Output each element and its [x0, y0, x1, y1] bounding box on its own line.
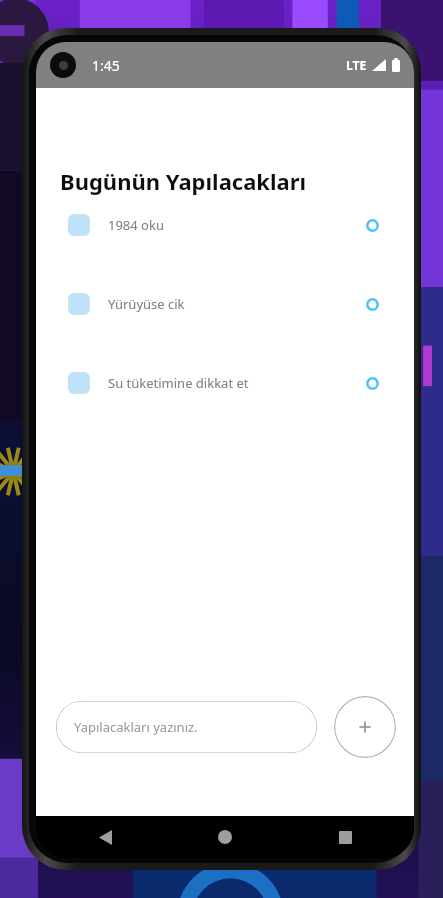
button[interactable]: Recent apps — [328, 820, 362, 854]
button[interactable]: Yapılacakları yazınız. — [56, 701, 317, 753]
staticText: Yapılacakları yazınız. — [74, 718, 198, 736]
button[interactable]: 1984 oku — [36, 210, 414, 240]
staticText: Su tüketimine dikkat et — [108, 374, 249, 392]
other: Delete 1984 oku — [362, 215, 382, 235]
button[interactable]: Back — [88, 820, 122, 854]
other: Delete Yürüyüse cik — [362, 294, 382, 314]
button[interactable]: Su tüketimine dikkat et — [36, 368, 414, 398]
staticText: 1984 oku — [108, 216, 164, 234]
staticText: Bugünün Yapılacakları — [60, 166, 307, 196]
button[interactable]: Add task — [334, 696, 396, 758]
staticText: Yürüyüse cik — [108, 295, 185, 313]
staticText: 1:45 — [92, 56, 120, 75]
staticText: LTE — [346, 57, 367, 73]
button[interactable]: Yürüyüse cik — [36, 289, 414, 319]
button[interactable]: Home — [208, 820, 242, 854]
other: Delete Su tüketimine dikkat et — [362, 373, 382, 393]
